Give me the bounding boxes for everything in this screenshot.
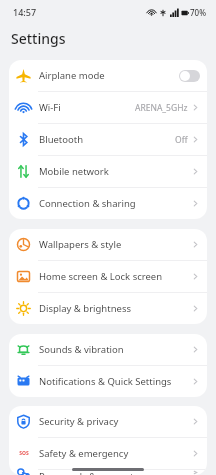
staticText: Passwords & accounts [39,470,191,475]
staticText: Sounds & vibration [39,343,191,356]
staticText: Off [175,134,188,146]
staticText: 70% [190,7,206,18]
staticText: Airplane mode [39,69,179,82]
staticText: Security & privacy [39,415,191,428]
button[interactable]: Wi-Fi [9,92,207,123]
staticText: Notifications & Quick Settings [39,375,191,388]
button[interactable]: Wallpapers & style [9,229,207,260]
staticText: 14:57 [13,6,37,18]
button[interactable]: Security & privacy [9,406,207,437]
button[interactable]: Mobile network [9,156,207,187]
staticText: ARENA_5GHz [135,102,188,114]
button[interactable]: Passwords & accounts [9,470,207,475]
button[interactable]: Airplane mode toggle [179,70,200,82]
staticText: Connection & sharing [39,197,191,210]
button[interactable]: Notifications & Quick Settings [9,366,207,397]
staticText: Settings [11,29,66,48]
staticText: Display & brightness [39,302,191,315]
staticText: Wallpapers & style [39,238,191,251]
staticText: Wi-Fi [39,101,135,114]
staticText: Mobile network [39,165,191,178]
button[interactable]: Sounds & vibration [9,334,207,365]
button[interactable]: Home screen & Lock screen [9,261,207,292]
staticText: SOS [19,450,29,457]
staticText: Home screen & Lock screen [39,270,191,283]
button[interactable]: Bluetooth [9,124,207,155]
button[interactable]: Connection & sharing [9,188,207,219]
button[interactable]: SOS [9,438,207,469]
staticText: Bluetooth [39,133,175,146]
button[interactable]: Display & brightness [9,293,207,324]
staticText: Safety & emergency [39,447,191,460]
button[interactable]: Airplane mode [9,60,207,91]
